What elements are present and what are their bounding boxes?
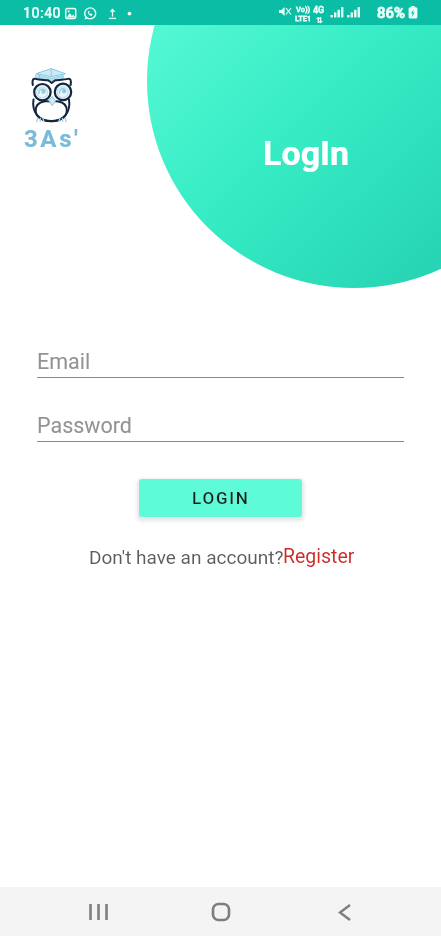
staticText: Vo)) <box>296 5 311 14</box>
staticText: Password <box>37 413 132 438</box>
button[interactable]: Register <box>283 545 355 568</box>
button[interactable]: Don't have an account? <box>89 546 284 568</box>
button[interactable]: Back <box>322 889 368 935</box>
staticText: Email <box>37 349 91 374</box>
staticText: 10:40 <box>23 5 62 21</box>
staticText: 4G <box>313 5 325 16</box>
staticText: 3As' <box>24 125 81 153</box>
staticText: LTE1 <box>295 14 312 23</box>
staticText: LOGIN <box>192 488 250 508</box>
button[interactable]: Home <box>198 889 244 935</box>
staticText: ⇅ <box>316 16 323 25</box>
staticText: LogIn <box>263 133 350 173</box>
button[interactable]: LOGIN <box>139 479 302 517</box>
staticText: 86% <box>377 4 406 22</box>
button[interactable]: Recent apps <box>75 889 121 935</box>
